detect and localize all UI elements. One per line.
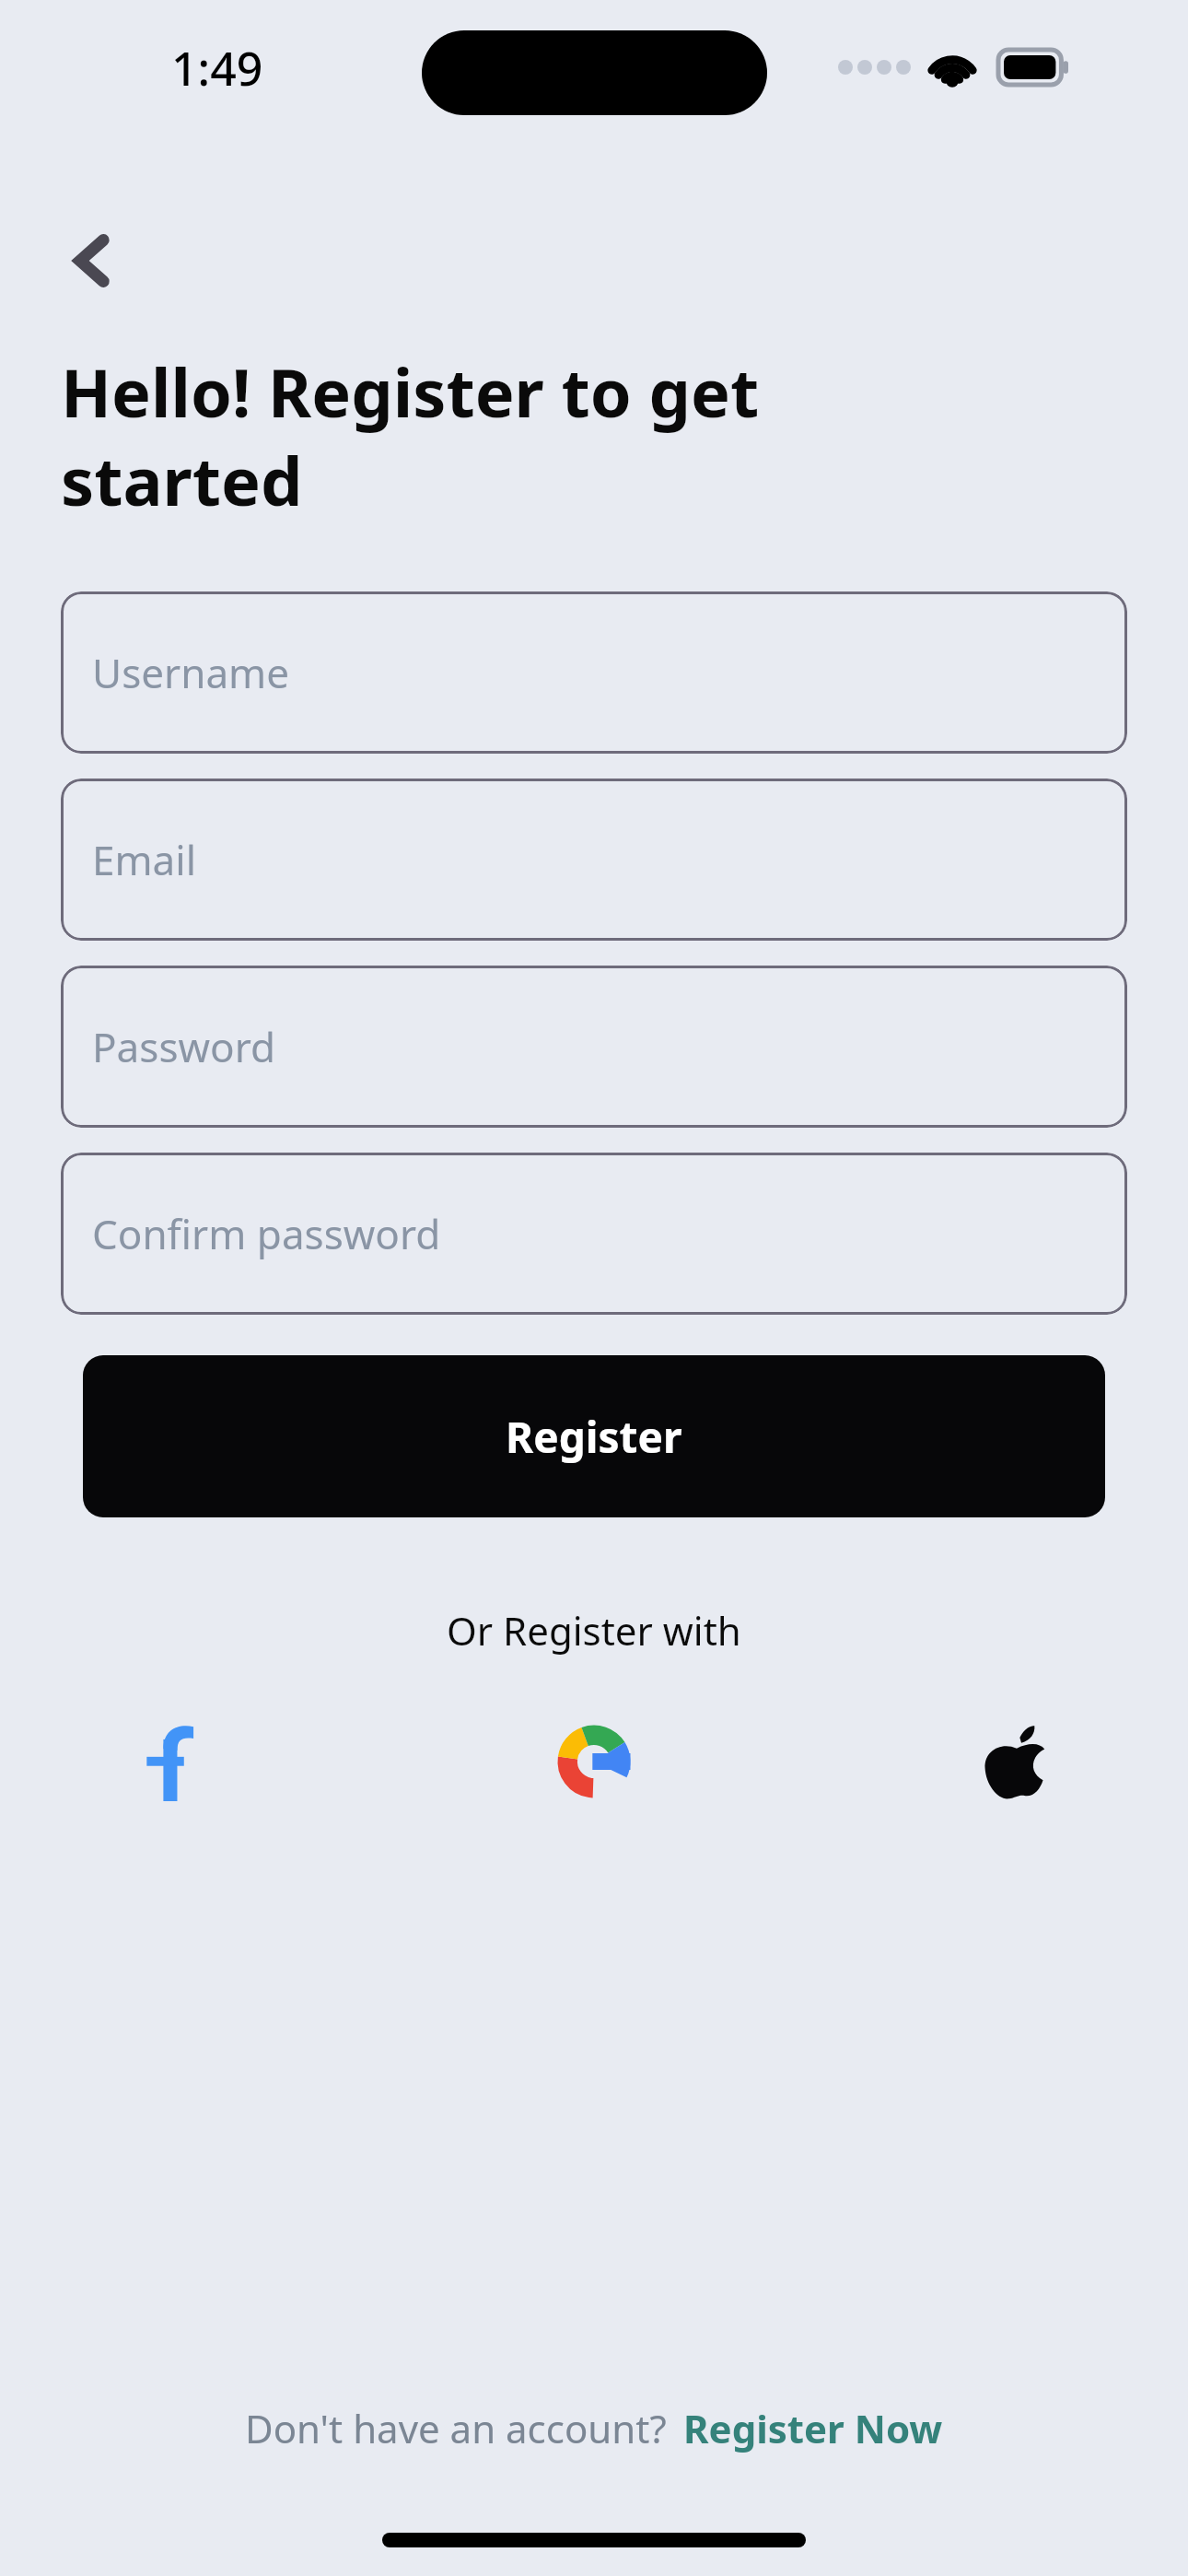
- button[interactable]: Password: [61, 966, 1127, 1128]
- button[interactable]: Email: [61, 779, 1127, 941]
- staticText: Register Now: [683, 2402, 943, 2454]
- button[interactable]: Back: [61, 210, 162, 311]
- button[interactable]: Register with Apple: [961, 1706, 1072, 1817]
- staticText: Username: [92, 645, 290, 700]
- button[interactable]: Register Now: [683, 2402, 943, 2454]
- staticText: Confirm password: [92, 1206, 441, 1261]
- staticText: Email: [92, 832, 196, 887]
- button[interactable]: Register with Google: [539, 1706, 649, 1817]
- button[interactable]: Confirm password: [61, 1153, 1127, 1315]
- button[interactable]: Register with Facebook: [116, 1706, 227, 1817]
- staticText: Or Register with: [447, 1604, 741, 1657]
- button[interactable]: Username: [61, 591, 1127, 754]
- staticText: Register: [506, 1408, 682, 1466]
- staticText: 1:49: [171, 37, 263, 100]
- button[interactable]: Register: [83, 1355, 1105, 1517]
- staticText: Password: [92, 1019, 276, 1074]
- staticText: Hello! Register to get started: [61, 346, 760, 525]
- staticText: Don't have an account?: [245, 2402, 667, 2454]
